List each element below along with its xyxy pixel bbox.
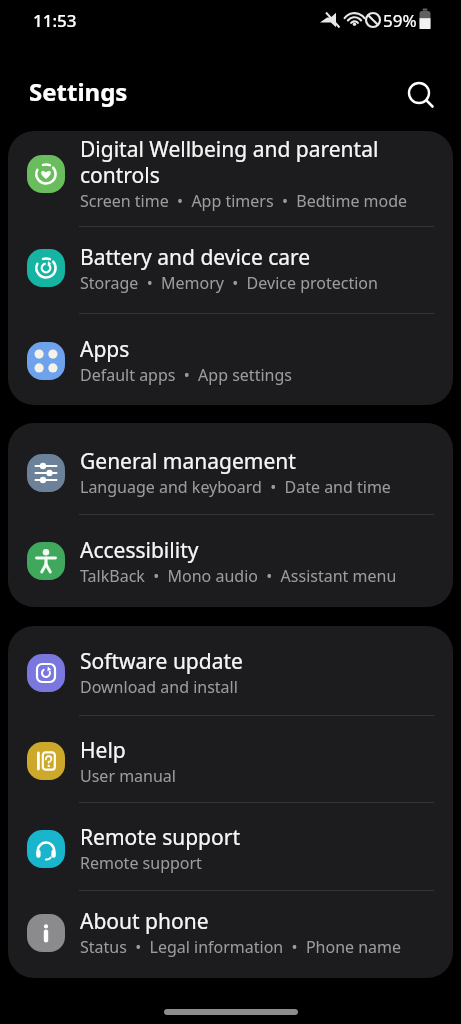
staticText: General management: [80, 447, 296, 476]
staticText: Default apps • App settings: [80, 364, 292, 386]
staticText: Download and install: [80, 676, 238, 698]
staticText: 11:53: [33, 9, 77, 32]
staticText: TalkBack • Mono audio • Assistant menu: [80, 565, 397, 587]
staticText: Help: [80, 736, 126, 765]
staticText: Storage • Memory • Device protection: [80, 272, 378, 294]
staticText: Apps: [80, 335, 130, 364]
staticText: Battery and device care: [80, 243, 311, 272]
button[interactable]: Remote support: [8, 803, 453, 890]
staticText: Remote support: [80, 852, 202, 874]
button[interactable]: About phone: [8, 891, 453, 978]
staticText: Screen time • App timers • Bedtime mode: [80, 190, 408, 212]
button[interactable]: Battery and device care: [8, 227, 453, 313]
staticText: Remote support: [80, 823, 240, 852]
staticText: Language and keyboard • Date and time: [80, 476, 391, 498]
button[interactable]: Software update: [8, 626, 453, 715]
staticText: About phone: [80, 907, 209, 936]
button[interactable]: Accessibility: [8, 515, 453, 607]
staticText: Settings: [29, 75, 128, 108]
staticText: User manual: [80, 765, 176, 787]
staticText: Accessibility: [80, 536, 199, 565]
button[interactable]: Digital Wellbeing and parental controls: [8, 131, 453, 226]
button[interactable]: [402, 77, 442, 117]
staticText: 59%: [383, 9, 417, 32]
button[interactable]: General management: [8, 423, 453, 514]
button[interactable]: Help: [8, 716, 453, 802]
staticText: Status • Legal information • Phone name: [80, 936, 402, 958]
staticText: Software update: [80, 647, 243, 676]
staticText: Digital Wellbeing and parental controls: [80, 135, 379, 190]
button[interactable]: Apps: [8, 314, 453, 405]
